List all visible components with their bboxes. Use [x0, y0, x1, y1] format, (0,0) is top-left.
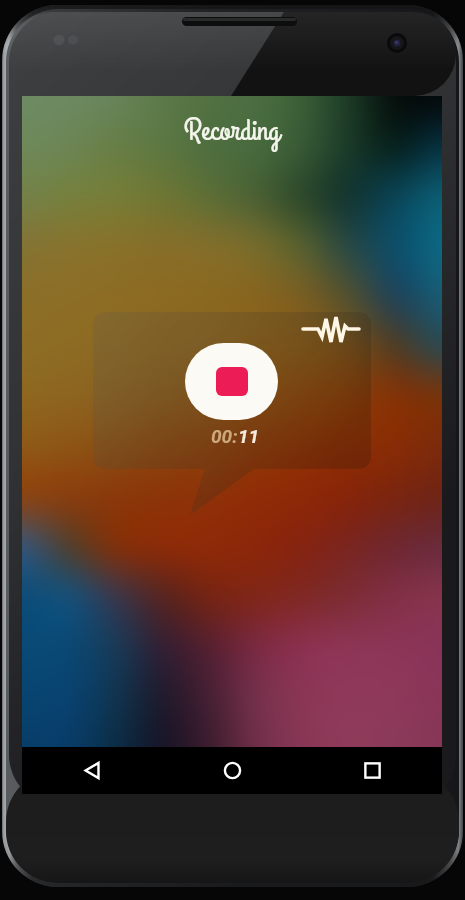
button[interactable]: Stop recording	[185, 343, 278, 420]
button[interactable]: Recent apps	[302, 747, 442, 794]
staticText: Recording	[184, 110, 280, 152]
staticText: 11	[238, 425, 260, 447]
button[interactable]: Home	[162, 747, 302, 794]
button[interactable]: Back	[22, 747, 162, 794]
staticText: 00:	[211, 425, 238, 447]
button[interactable]: Audio waveform	[298, 314, 364, 344]
